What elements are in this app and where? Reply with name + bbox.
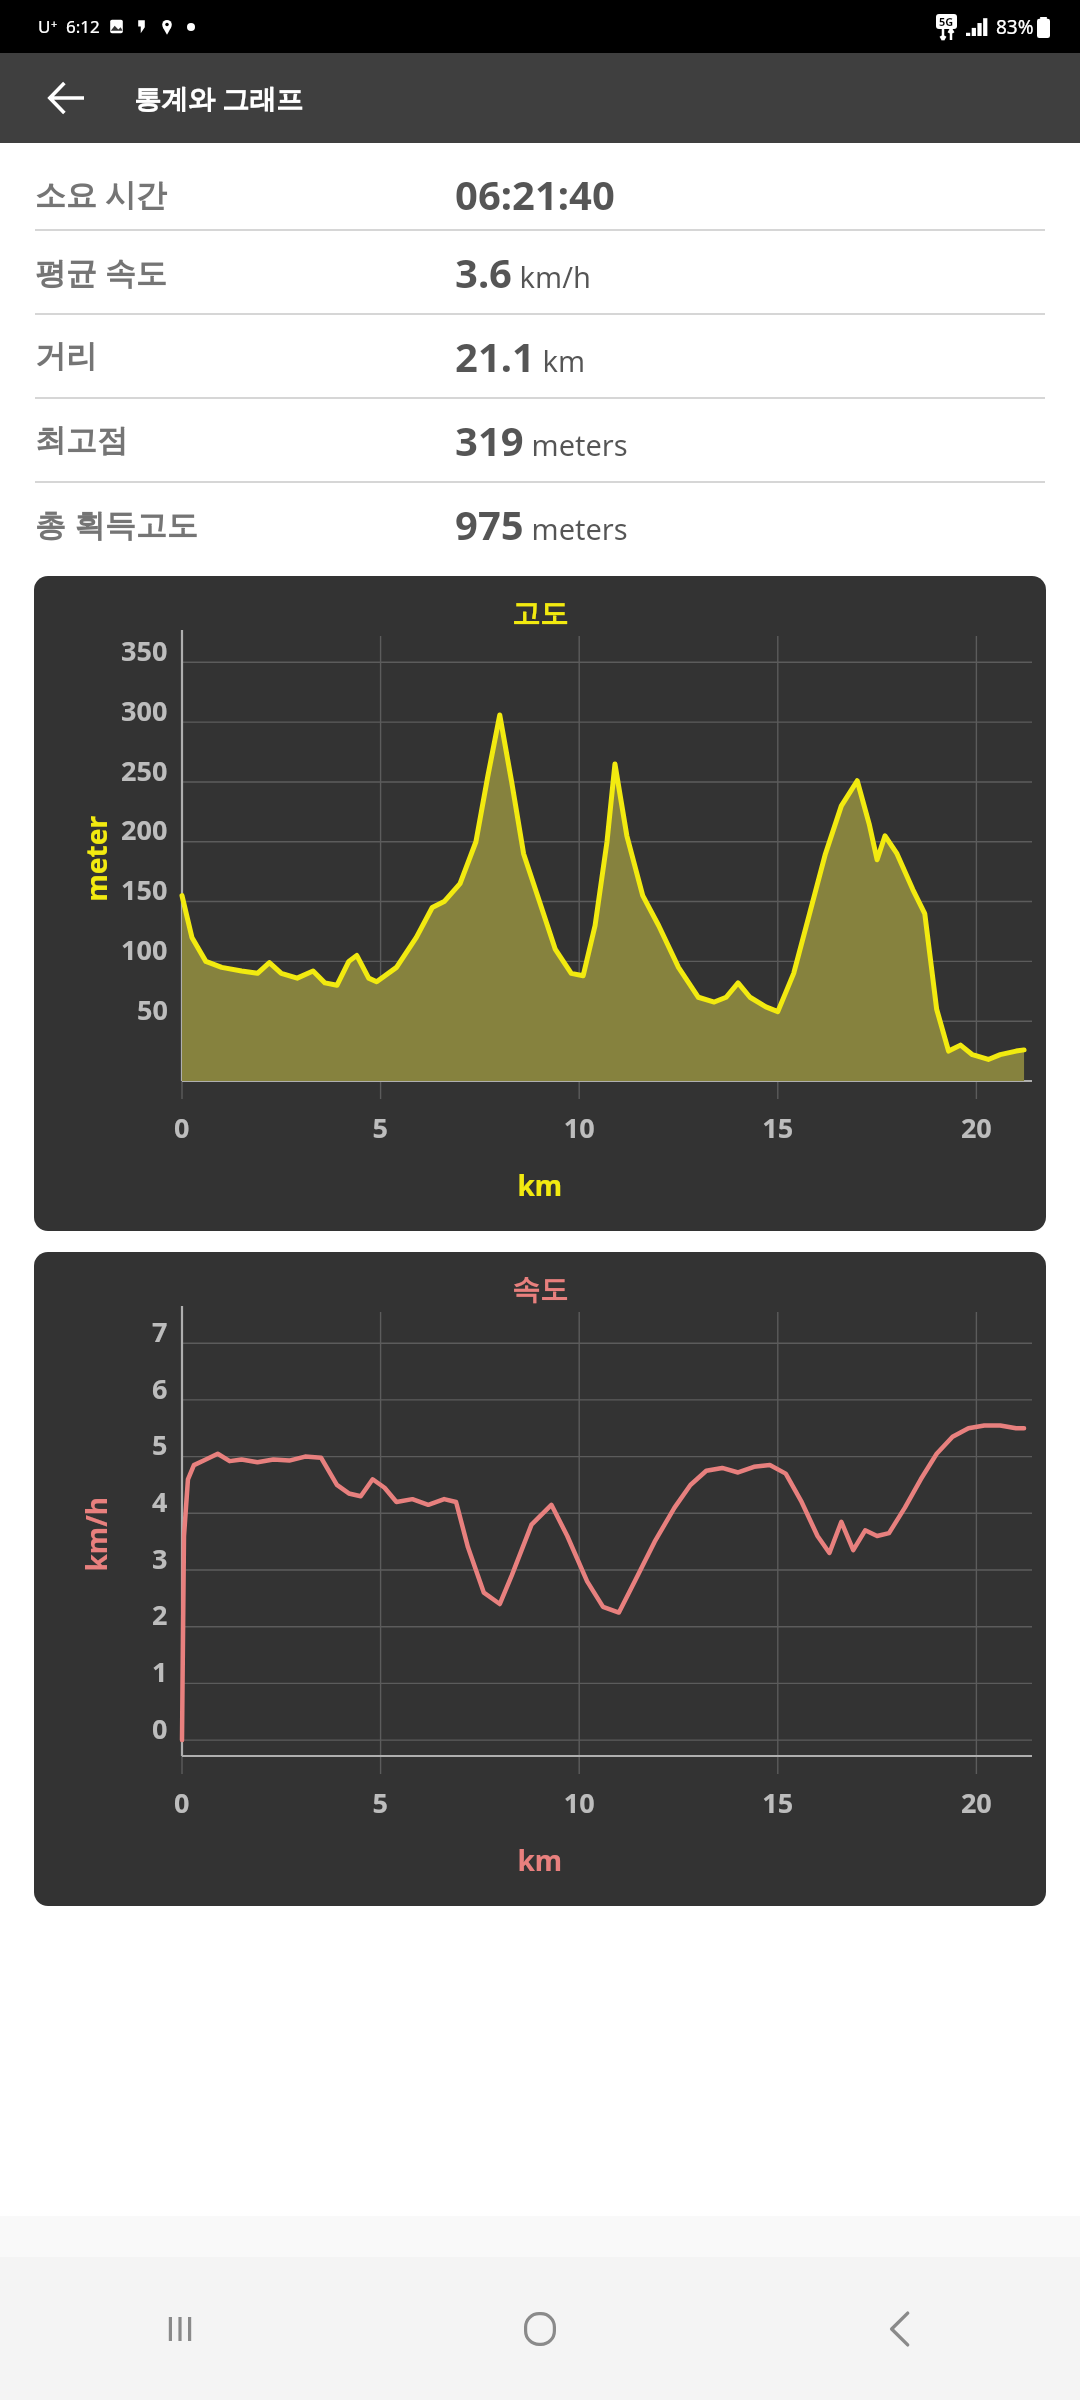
staticText: 975 (455, 497, 524, 551)
staticText: 5G (939, 14, 954, 29)
button[interactable]: Back (720, 2257, 1080, 2400)
staticText: 최고점 (35, 421, 455, 460)
staticText: 06:21:40 (455, 167, 615, 221)
button[interactable]: Back (40, 72, 92, 124)
button[interactable]: Home (360, 2257, 720, 2400)
button[interactable] (34, 576, 1046, 1231)
staticText: 거리 (35, 337, 455, 376)
staticText: km (535, 341, 586, 380)
staticText: 319 (455, 413, 524, 467)
staticText: 83% (996, 14, 1034, 40)
staticText: 평균 속도 (35, 251, 455, 293)
staticText: + (51, 16, 58, 31)
staticText: 21.1 (455, 329, 535, 383)
button[interactable]: Recents (0, 2257, 360, 2400)
staticText: 통계와 그래프 (134, 80, 304, 117)
button[interactable] (34, 1252, 1046, 1906)
staticText: 총 획득고도 (35, 503, 455, 545)
staticText: U (38, 15, 51, 38)
staticText: 소요 시간 (35, 173, 455, 215)
staticText: meters (524, 509, 628, 548)
staticText: 3.6 (455, 245, 512, 299)
staticText: km/h (512, 257, 591, 296)
staticText: meters (524, 425, 628, 464)
staticText: 6:12 (66, 15, 100, 38)
